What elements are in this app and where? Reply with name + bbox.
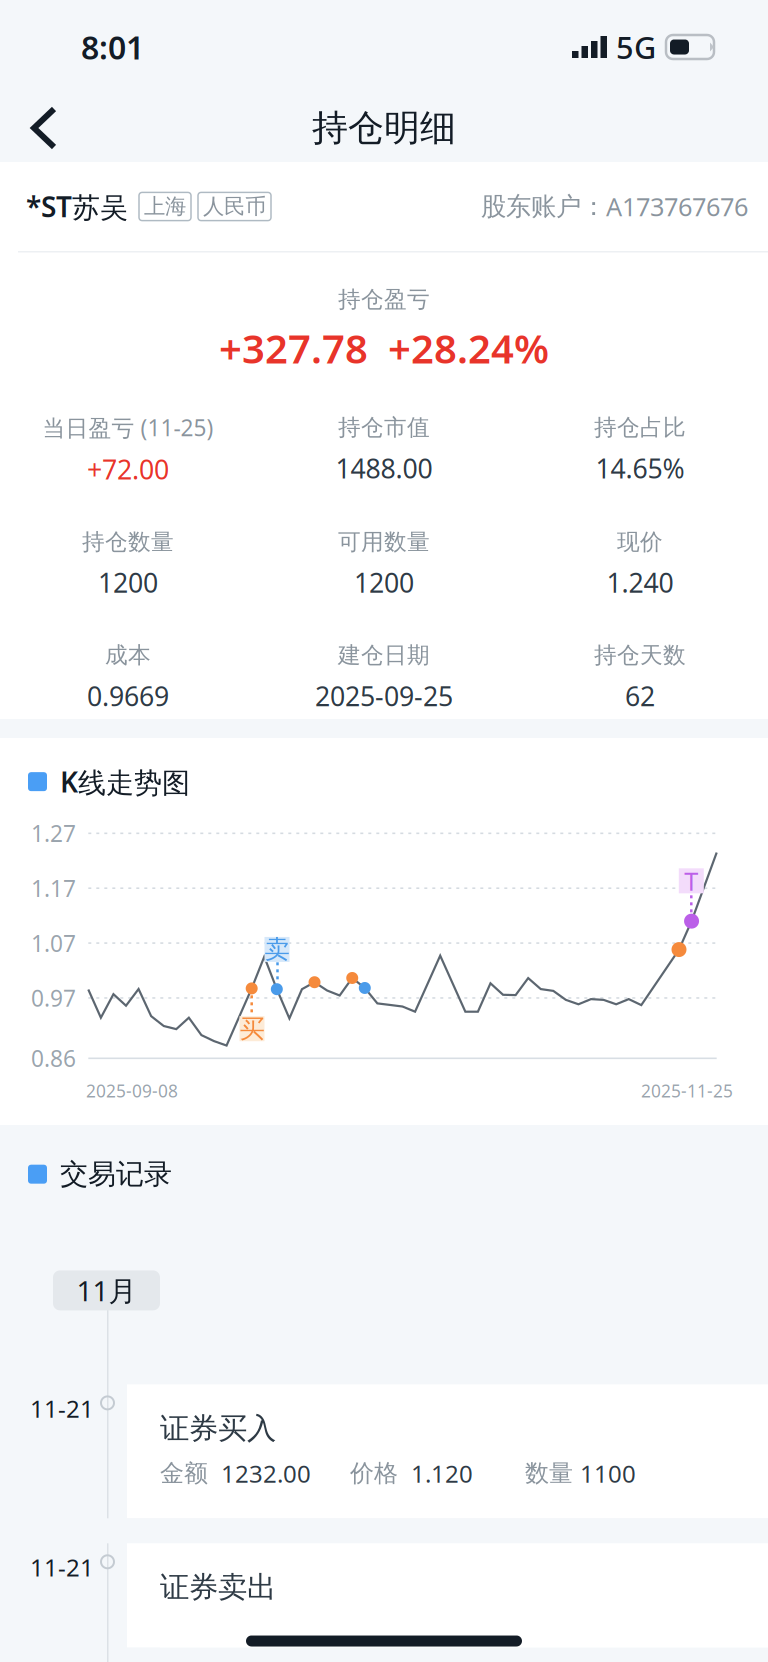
staticText: 14.65% xyxy=(595,450,684,486)
staticText: 1.120 xyxy=(411,1457,473,1489)
staticText: 证券买入 xyxy=(160,1410,276,1446)
staticText: 证券卖出 xyxy=(160,1569,276,1605)
staticText: 可用数量 xyxy=(338,528,430,556)
staticText: 11-21 xyxy=(30,1551,94,1583)
staticText: 1200 xyxy=(354,565,414,600)
staticText: +327.78 +28.24% xyxy=(219,321,549,374)
staticText: 8:01 xyxy=(81,26,144,68)
staticText: 持仓天数 xyxy=(594,641,686,669)
staticText: 2025-09-25 xyxy=(315,678,453,713)
staticText: 现价 xyxy=(617,528,663,556)
staticText: 11-21 xyxy=(30,1392,94,1424)
staticText: A173767676 xyxy=(606,190,748,223)
staticText: 1.27 xyxy=(31,818,76,848)
staticText: 持仓数量 xyxy=(82,528,174,556)
staticText: 成本 xyxy=(105,641,151,669)
staticText: 1488.00 xyxy=(335,450,432,486)
staticText: 1.240 xyxy=(606,565,673,600)
staticText: T xyxy=(684,864,698,898)
staticText: 持仓占比 xyxy=(594,414,686,441)
staticText: 11月 xyxy=(76,1272,136,1309)
staticText: 持仓市值 xyxy=(338,414,430,441)
staticText: 数量 xyxy=(525,1459,573,1488)
staticText: 价格 xyxy=(350,1459,398,1488)
button[interactable]: 11-21 xyxy=(0,1384,768,1518)
staticText: 交易记录 xyxy=(60,1157,172,1191)
staticText: 2025-09-08 xyxy=(86,1079,178,1102)
staticText: 金额 xyxy=(160,1459,208,1488)
staticText: K线走势图 xyxy=(60,763,190,800)
staticText: 1100 xyxy=(580,1457,636,1489)
staticText: 1.17 xyxy=(31,873,76,903)
staticText: 当日盈亏 (11-25) xyxy=(42,412,213,443)
staticText: 买 xyxy=(239,1013,264,1044)
staticText: 5G xyxy=(616,27,656,67)
staticText: +72.00 xyxy=(87,452,169,487)
staticText: 0.9669 xyxy=(87,678,169,713)
staticText: 1232.00 xyxy=(221,1457,311,1489)
staticText: 1.07 xyxy=(31,928,76,958)
staticText: 1200 xyxy=(98,565,158,600)
staticText: 人民币 xyxy=(203,193,266,220)
staticText: 0.86 xyxy=(31,1043,76,1073)
staticText: 卖 xyxy=(264,934,289,965)
staticText: *ST苏吴 xyxy=(26,188,128,225)
staticText: 62 xyxy=(625,678,655,713)
staticText: 股东账户： xyxy=(481,191,606,222)
staticText: 0.97 xyxy=(31,983,76,1013)
staticText: 上海 xyxy=(144,193,186,220)
staticText: 持仓明细 xyxy=(312,106,456,150)
button[interactable]: 11-21 xyxy=(0,1543,768,1647)
staticText: 建仓日期 xyxy=(338,641,430,669)
staticText: 持仓盈亏 xyxy=(338,285,430,313)
button[interactable]: Back xyxy=(0,95,76,161)
staticText: 2025-11-25 xyxy=(641,1079,733,1102)
